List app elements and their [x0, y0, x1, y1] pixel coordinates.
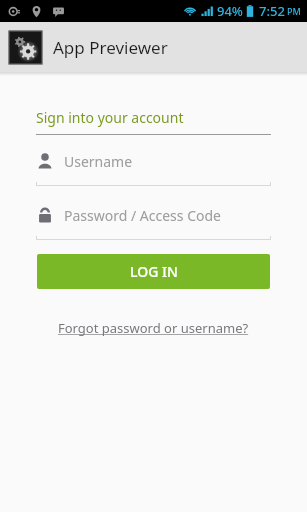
staticText: Username [64, 152, 133, 171]
staticText: LOG IN [130, 262, 178, 281]
staticText: Forgot password or username? [58, 319, 249, 337]
button[interactable]: Username [36, 148, 271, 186]
staticText: 94% [217, 2, 243, 20]
staticText: PM [287, 5, 301, 17]
staticText: App Previewer [53, 36, 168, 59]
button[interactable]: Forgot password or username? [54, 315, 253, 341]
button[interactable]: Password / Access Code [36, 202, 271, 240]
staticText: Sign into your account [36, 108, 184, 127]
button[interactable]: LOG IN [37, 254, 270, 289]
staticText: Password / Access Code [64, 206, 221, 225]
staticText: 7:52 [259, 2, 285, 20]
